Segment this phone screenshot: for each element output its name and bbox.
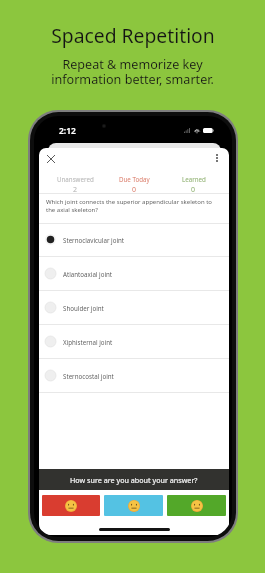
staticText: 0: [191, 185, 196, 194]
button[interactable]: Somewhat sure: [104, 495, 163, 516]
staticText: Xiphisternal joint: [63, 338, 113, 346]
staticText: 0: [132, 185, 137, 194]
button[interactable]: Unanswered: [45, 175, 105, 194]
staticText: Unanswered: [57, 175, 94, 183]
button[interactable]: Sternocostal joint: [39, 359, 229, 392]
staticText: 2: [73, 185, 78, 194]
staticText: Learned: [182, 175, 206, 183]
button[interactable]: Due Today: [105, 175, 164, 194]
staticText: Repeat & memorize key information better…: [51, 56, 214, 88]
staticText: 2:12: [59, 125, 76, 137]
button[interactable]: Shoulder joint: [39, 291, 229, 324]
button[interactable]: Atlantoaxial joint: [39, 257, 229, 290]
button[interactable]: Close: [42, 150, 60, 168]
staticText: Which joint connects the superior append…: [46, 198, 222, 214]
button[interactable]: Learned: [164, 175, 223, 194]
staticText: Atlantoaxial joint: [63, 270, 113, 278]
button[interactable]: Not sure: [42, 495, 100, 516]
staticText: Due Today: [119, 175, 150, 183]
staticText: Shoulder joint: [63, 304, 104, 312]
button[interactable]: More options: [208, 149, 226, 167]
button[interactable]: Xiphisternal joint: [39, 325, 229, 358]
button[interactable]: Sternoclavicular joint: [39, 223, 229, 256]
staticText: How sure are you about your answer?: [70, 475, 198, 485]
staticText: Sternoclavicular joint: [63, 236, 125, 244]
button[interactable]: Very sure: [167, 495, 226, 516]
staticText: Spaced Repetition: [51, 22, 215, 48]
staticText: Sternocostal joint: [63, 372, 114, 380]
